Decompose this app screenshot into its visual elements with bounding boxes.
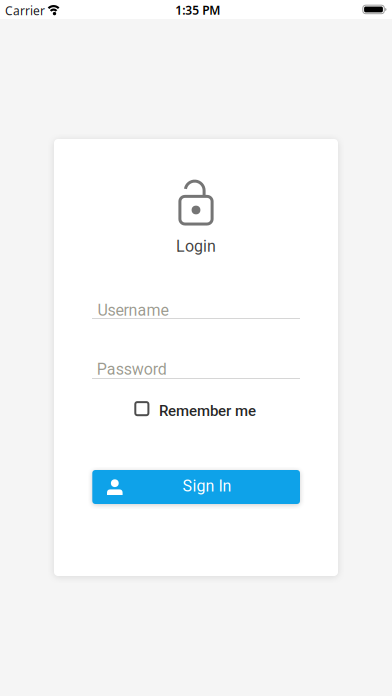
staticText: Password	[97, 360, 167, 379]
staticText: 1:35 PM	[175, 2, 220, 18]
textField[interactable]: Username	[97, 301, 297, 320]
staticText: Remember me	[159, 402, 256, 420]
staticText: Carrier	[5, 2, 45, 18]
button[interactable]: Sign In	[92, 470, 300, 504]
secureTextField[interactable]: Password	[97, 360, 297, 379]
staticText: Login	[176, 237, 216, 256]
button[interactable]: Remember me	[134, 400, 259, 418]
staticText: Username	[97, 301, 168, 320]
staticText: Sign In	[182, 477, 231, 496]
